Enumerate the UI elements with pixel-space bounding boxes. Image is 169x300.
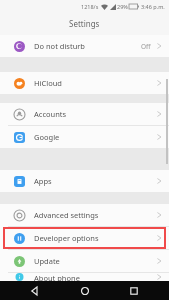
staticText: About phone bbox=[34, 273, 157, 281]
button[interactable]: Apps bbox=[0, 170, 169, 192]
staticText: 29% bbox=[117, 3, 128, 10]
button[interactable]: Google bbox=[0, 126, 169, 148]
button[interactable]: Accounts bbox=[0, 103, 169, 125]
staticText: Settings bbox=[69, 18, 100, 29]
button[interactable]: Update bbox=[0, 250, 169, 272]
button[interactable]: Recents bbox=[119, 281, 149, 300]
button[interactable]: Developer options bbox=[0, 227, 169, 249]
button[interactable]: Home bbox=[70, 281, 100, 300]
staticText: 3:46 p.m. bbox=[141, 3, 165, 10]
staticText: HiCloud bbox=[34, 78, 157, 88]
staticText: 1218/s bbox=[81, 3, 99, 10]
button[interactable]: About phone bbox=[0, 273, 169, 281]
button[interactable]: Do not disturb bbox=[0, 35, 169, 57]
staticText: Off bbox=[141, 42, 151, 51]
staticText: Do not disturb bbox=[34, 41, 141, 51]
staticText: Accounts bbox=[34, 109, 157, 119]
staticText: Advanced settings bbox=[34, 210, 157, 220]
staticText: Google bbox=[34, 132, 157, 142]
staticText: Apps bbox=[34, 176, 157, 186]
button[interactable]: Back bbox=[20, 281, 50, 300]
staticText: Developer options bbox=[34, 233, 157, 243]
button[interactable]: Advanced settings bbox=[0, 204, 169, 226]
button[interactable]: HiCloud bbox=[0, 72, 169, 94]
staticText: Update bbox=[34, 256, 157, 266]
